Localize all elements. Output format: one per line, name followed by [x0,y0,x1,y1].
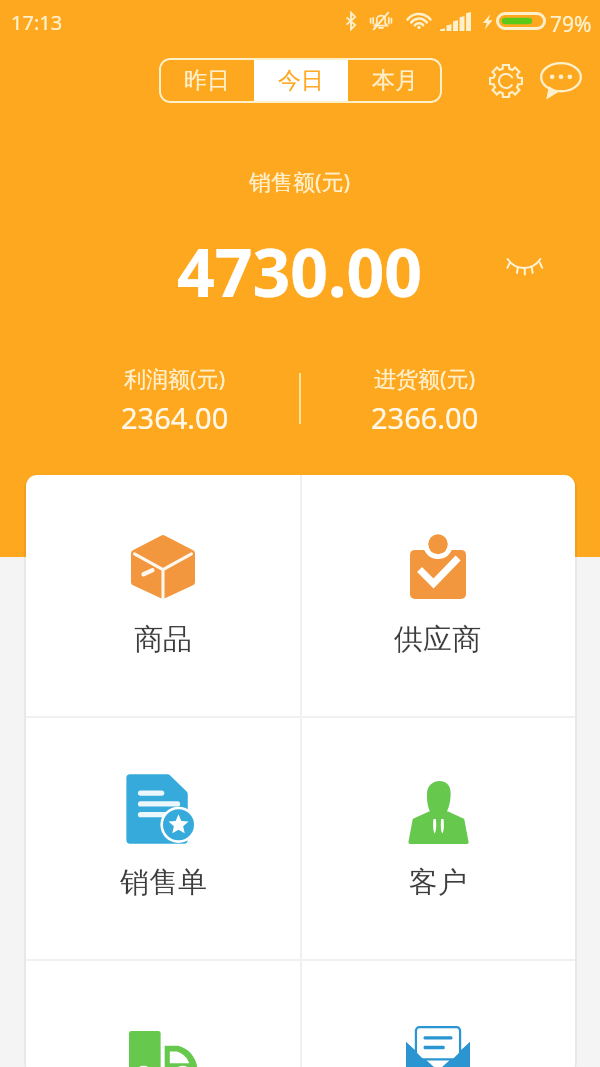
staticText: 4730.00 [177,226,423,316]
button[interactable]: 昨日 [159,58,254,103]
staticText: 79% [550,10,592,39]
button[interactable]: Settings [484,59,528,103]
button[interactable]: 客户 [300,718,575,959]
button[interactable]: Messages [539,59,583,103]
staticText: 昨日 [184,66,230,95]
staticText: 供应商 [394,621,481,658]
button[interactable]: Hide amount [498,237,550,289]
staticText: 进货额(元) [374,363,476,393]
staticText: 2364.00 [121,398,229,437]
staticText: 商品 [134,621,192,658]
staticText: 客户 [409,864,467,901]
staticText: 销售单 [120,864,207,901]
staticText: 利润额(元) [124,363,226,393]
staticText: 2366.00 [371,398,479,437]
staticText: 今日 [278,66,324,95]
button[interactable]: 销售单 [26,718,300,959]
button[interactable]: 商品 [26,475,300,716]
button[interactable]: 进货单 [26,961,300,1067]
staticText: 销售额(元) [249,166,351,196]
button[interactable]: 今日 [254,58,348,103]
staticText: 17:13 [11,9,63,36]
button[interactable]: 供应商 [300,475,575,716]
button[interactable]: 消息 [300,961,575,1067]
button[interactable]: 本月 [348,58,442,103]
staticText: 本月 [372,66,418,95]
